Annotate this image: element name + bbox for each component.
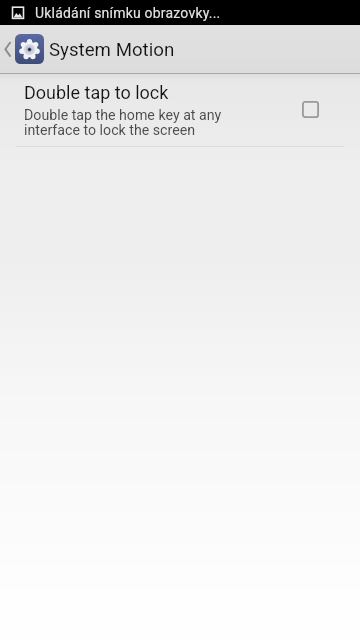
button[interactable]: Double tap to lock, off [294,93,327,126]
button[interactable]: Double tap to lock [0,74,360,147]
staticText: System Motion [49,39,175,61]
staticText: Double tap the home key at any interface… [24,107,222,139]
button[interactable]: Navigate up [0,25,45,72]
staticText: Double tap to lock [24,82,169,103]
staticText: Ukládání snímku obrazovky... [35,5,221,21]
other: Screenshot [11,6,25,20]
